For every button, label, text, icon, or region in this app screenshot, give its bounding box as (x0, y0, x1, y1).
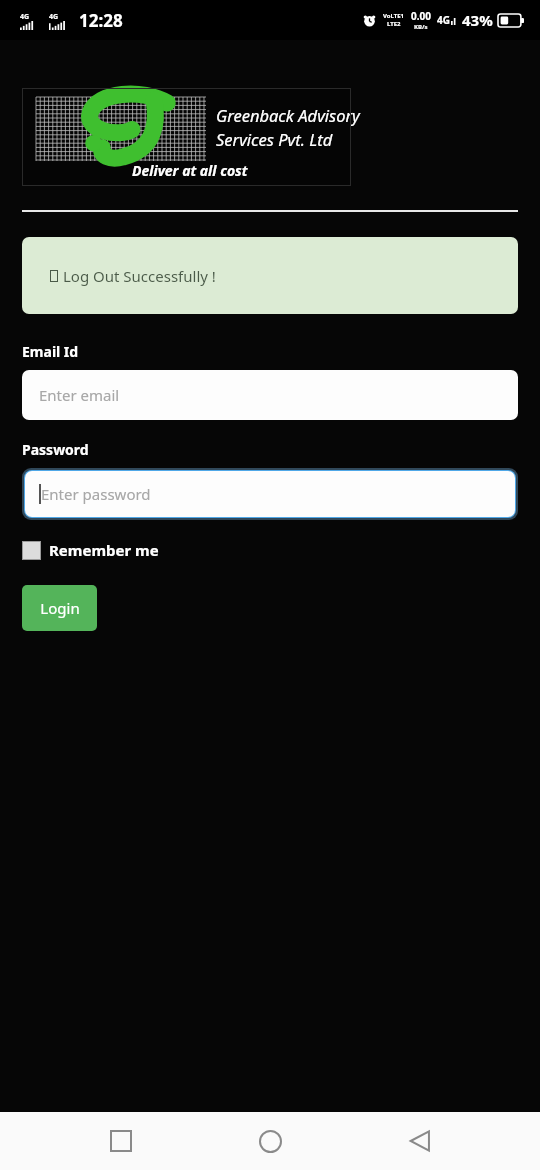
staticText: Services Pvt. Ltd (216, 128, 333, 150)
staticText: Log Out Successfully ! (63, 266, 216, 286)
staticText: 4G (49, 12, 59, 22)
staticText: Greenback Advisory (216, 104, 360, 126)
button[interactable]: Recent apps (93, 1113, 149, 1169)
staticText: KB/s (414, 23, 428, 31)
staticText: 4G (20, 12, 30, 22)
staticText: 4G (437, 13, 450, 27)
button[interactable]: Login (22, 585, 97, 631)
staticText: Deliver at all cost (132, 161, 248, 180)
button[interactable]: Home (242, 1113, 298, 1169)
staticText: LTE2 (387, 20, 401, 28)
staticText: Login (40, 598, 80, 618)
staticText: 12:28 (79, 9, 123, 32)
staticText: Password (22, 440, 89, 459)
staticText: Enter password (41, 484, 151, 504)
button[interactable]: Log Out Successfully ! (22, 237, 518, 314)
button[interactable]: Enter email (22, 370, 518, 420)
button[interactable]: Enter password (25, 471, 515, 517)
staticText: Remember me (49, 540, 159, 560)
staticText: 43% (462, 10, 493, 30)
staticText: 0.00 (411, 9, 431, 23)
staticText: Enter email (39, 385, 120, 405)
staticText: VoLTE1 (383, 12, 405, 20)
staticText: Email Id (22, 342, 79, 361)
button[interactable]: Back (391, 1113, 447, 1169)
button[interactable]: Remember me (22, 540, 159, 560)
